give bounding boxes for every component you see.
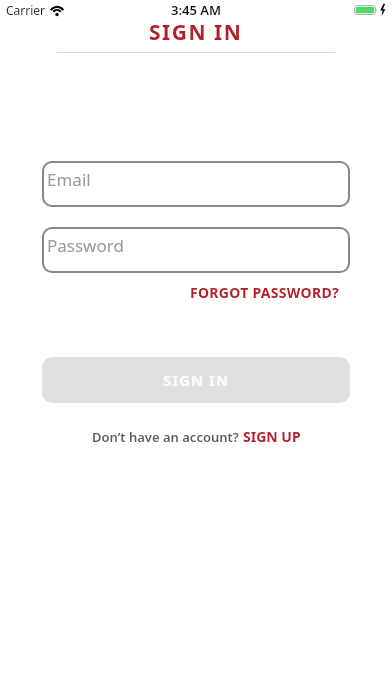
staticText: Email — [47, 168, 91, 191]
staticText: FORGOT PASSWORD? — [190, 283, 339, 302]
staticText: Don’t have an account? — [92, 428, 243, 446]
button[interactable]: FORGOT PASSWORD? — [190, 283, 339, 302]
button[interactable]: Password — [42, 227, 350, 273]
staticText: SIGN IN — [149, 18, 243, 47]
button[interactable]: SIGN UP — [243, 427, 301, 446]
staticText: SIGN IN — [163, 370, 230, 390]
staticText: Password — [47, 234, 124, 257]
staticText: 3:45 AM — [171, 1, 222, 19]
staticText: Carrier — [6, 2, 46, 18]
staticText: SIGN UP — [243, 427, 301, 446]
button[interactable]: Email — [42, 161, 350, 207]
button[interactable]: SIGN IN — [42, 357, 350, 403]
